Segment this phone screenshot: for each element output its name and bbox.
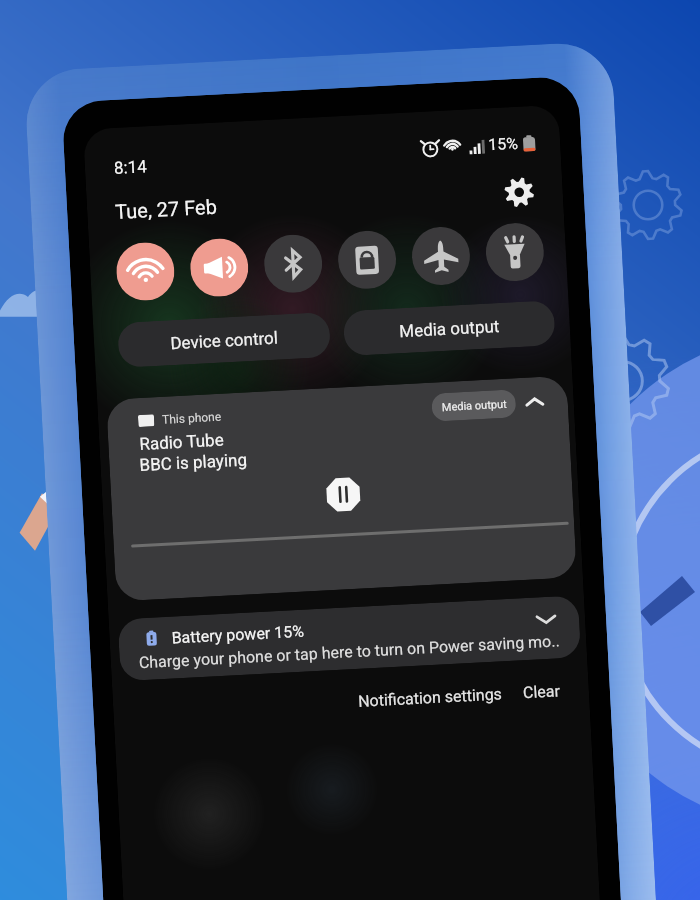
button[interactable]: Settings [503,176,536,209]
staticText: Clear [522,681,560,702]
button[interactable]: Battery power 15% [117,595,581,681]
staticText: Notification settings [358,684,502,711]
staticText: Battery power 15% [171,622,305,647]
button[interactable]: Wi-Fi [115,241,176,302]
button[interactable]: Expand [532,605,560,633]
button[interactable]: Collapse [522,390,547,415]
staticText: Tue, 27 Feb [115,195,218,223]
button[interactable]: Sound [189,237,250,298]
staticText: Charge your phone or tap here to turn on… [138,631,561,672]
staticText: Device control [170,328,278,353]
staticText: Radio Tube [139,430,225,454]
button[interactable]: Notification settings [358,684,502,711]
button[interactable]: Device control [117,312,331,368]
button[interactable]: Auto rotate [337,229,398,290]
button[interactable]: Media output [343,300,556,356]
staticText: 8:14 [113,156,147,178]
button[interactable]: Flight mode [410,225,471,286]
button[interactable]: Clear [522,681,560,702]
button[interactable]: Media output [431,389,517,422]
staticText: BBC is playing [139,449,248,475]
staticText: This phone [162,410,222,427]
button[interactable]: Flashlight [484,222,545,283]
staticText: Media output [442,398,507,414]
staticText: 15% [488,134,519,154]
button[interactable]: Pause [324,475,362,513]
button[interactable]: This phone [106,376,577,601]
button[interactable]: Bluetooth [263,233,324,294]
staticText: Media output [398,316,500,341]
